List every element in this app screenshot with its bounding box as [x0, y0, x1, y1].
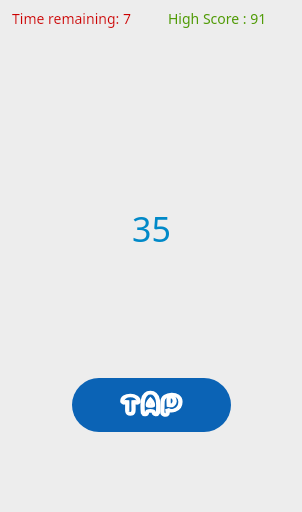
staticText: 35	[132, 206, 171, 252]
button[interactable]: High Score : 91	[168, 9, 267, 28]
button[interactable]: Time remaining: 7	[12, 9, 131, 28]
button[interactable]: Tap	[72, 378, 231, 432]
